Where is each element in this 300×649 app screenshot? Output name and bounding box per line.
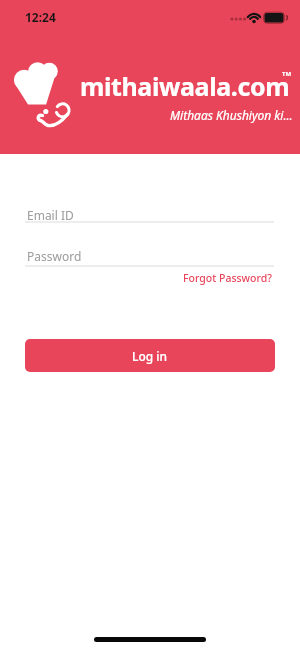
staticText: TM bbox=[282, 70, 292, 78]
staticText: Log in bbox=[132, 348, 168, 364]
button[interactable]: Password bbox=[25, 243, 274, 267]
staticText: Password bbox=[27, 248, 82, 264]
staticText: mithaiwaala.com bbox=[80, 69, 290, 103]
button[interactable]: Log in bbox=[25, 339, 275, 372]
staticText: Mithaas Khushiyon ki... bbox=[170, 107, 293, 123]
button[interactable]: Forgot Password? bbox=[183, 271, 272, 285]
staticText: Forgot Password? bbox=[183, 271, 272, 285]
staticText: Email ID bbox=[27, 207, 74, 223]
staticText: 12:24 bbox=[25, 9, 56, 25]
button[interactable]: Email ID bbox=[25, 199, 274, 223]
